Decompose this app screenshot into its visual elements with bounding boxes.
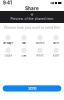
staticText: 9:41 [3,0,12,6]
staticText: Send [28,86,36,91]
staticText: Preview of the shared item [10,17,53,21]
staticText: Print [36,54,43,57]
staticText: More [52,41,59,45]
button[interactable]: More [48,35,64,45]
staticText: Edit [53,54,59,57]
button[interactable]: Save [16,48,32,57]
button[interactable]: Copy [0,48,16,57]
staticText: Choose how you want to send this [4,26,60,29]
button[interactable]: Mail [16,35,32,45]
staticText: Mail [21,41,26,45]
button[interactable]: Notes [32,35,48,45]
staticText: Share [25,6,39,11]
button[interactable]: Print [32,48,48,57]
button[interactable]: Send [3,85,61,91]
staticText: Message [2,41,13,45]
staticText: Copy [4,54,11,57]
button[interactable]: Message [0,35,16,45]
staticText: Save [21,54,27,57]
button[interactable]: Edit [48,48,64,57]
staticText: Notes [36,41,44,45]
